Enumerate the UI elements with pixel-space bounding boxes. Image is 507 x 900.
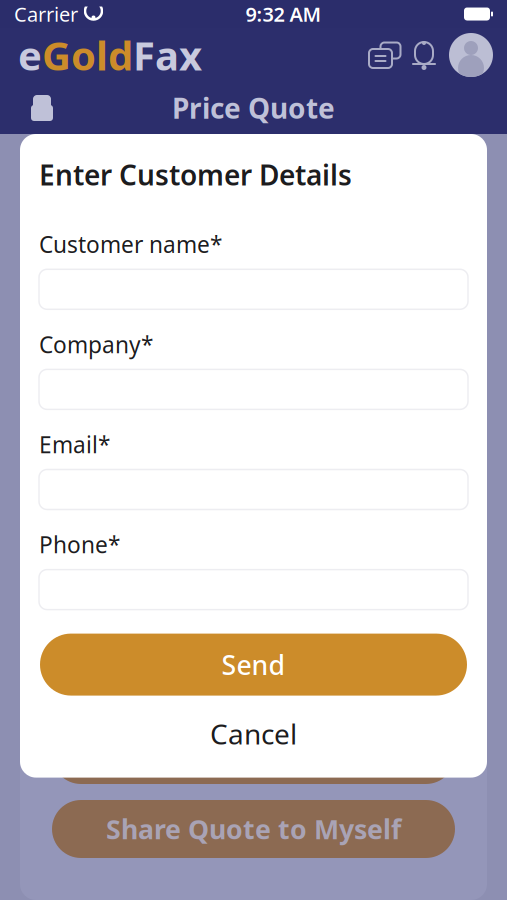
staticText: Cancel <box>210 715 297 752</box>
staticText: 9:32 AM <box>245 1 321 27</box>
staticText: Carrier <box>14 1 78 27</box>
button[interactable]: Home <box>0 86 62 130</box>
staticText: Company* <box>39 329 153 359</box>
button[interactable]: Cancel <box>40 712 467 756</box>
staticText: Enter Customer Details <box>39 156 352 193</box>
staticText: Send <box>221 647 285 682</box>
button[interactable]: Profile <box>443 33 507 77</box>
staticText: Share Quote <box>171 737 336 773</box>
button[interactable]: Messages <box>365 35 405 75</box>
staticText: Share Quote to Myself <box>106 811 401 847</box>
staticText: Phone* <box>39 529 120 560</box>
staticText: Price Quote <box>172 89 335 127</box>
staticText: Fax <box>133 28 202 81</box>
staticText: e <box>18 28 42 81</box>
staticText: Gold <box>42 28 133 81</box>
button[interactable]: Send <box>40 634 467 696</box>
button[interactable]: Share Quote to Myself <box>52 800 455 858</box>
staticText: Email* <box>39 429 110 459</box>
button[interactable]: Share Quote <box>52 726 455 784</box>
button[interactable]: Notifications <box>405 35 443 75</box>
staticText: Customer name* <box>39 229 222 259</box>
